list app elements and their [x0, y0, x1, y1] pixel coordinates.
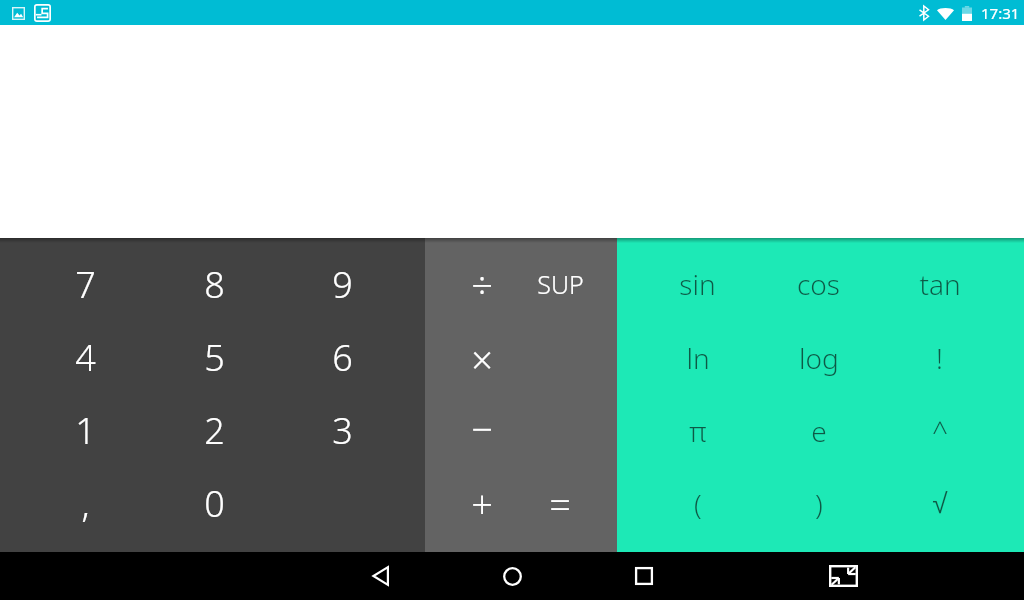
button[interactable]: 1	[21, 394, 150, 467]
button[interactable]: Home	[488, 552, 536, 600]
staticText: 17:31	[981, 3, 1020, 23]
button[interactable]: ×	[443, 322, 521, 395]
staticText: (	[694, 485, 702, 523]
button[interactable]: cos	[758, 247, 879, 321]
button[interactable]: 0	[150, 467, 278, 540]
button[interactable]: Recent apps	[620, 552, 668, 600]
staticText: π	[689, 412, 707, 450]
button[interactable]: 6	[278, 321, 406, 394]
button[interactable]: 9	[278, 247, 406, 321]
button[interactable]: ,	[21, 467, 150, 540]
staticText: ln	[686, 339, 710, 377]
button[interactable]: !	[879, 321, 1000, 394]
staticText: 9	[332, 260, 353, 309]
button[interactable]: +	[443, 467, 521, 540]
button[interactable]: (	[637, 467, 758, 540]
staticText: ^	[932, 412, 948, 450]
button[interactable]: =	[521, 467, 599, 540]
staticText: !	[936, 339, 943, 377]
staticText: sin	[679, 265, 716, 303]
button[interactable]: ^	[879, 394, 1000, 467]
button[interactable]: 3	[278, 394, 406, 467]
button[interactable]: 4	[21, 321, 150, 394]
staticText: 3	[332, 406, 353, 455]
button[interactable]: 2	[150, 394, 278, 467]
staticText: +	[471, 478, 493, 530]
button[interactable]: )	[758, 467, 879, 540]
button[interactable]: log	[758, 321, 879, 394]
staticText: ÷	[471, 258, 493, 310]
staticText: 2	[204, 406, 225, 455]
staticText: −	[471, 402, 493, 454]
staticText: SUP	[537, 267, 584, 301]
staticText: ×	[471, 333, 493, 385]
button[interactable]: Shrink screen	[819, 552, 867, 600]
staticText: ,	[81, 479, 90, 528]
button[interactable]: 8	[150, 247, 278, 321]
button[interactable]: e	[758, 394, 879, 467]
button[interactable]: Back	[356, 552, 404, 600]
button[interactable]: ln	[637, 321, 758, 394]
staticText: =	[549, 478, 571, 530]
staticText: e	[811, 412, 827, 450]
button[interactable]: ÷	[443, 247, 521, 321]
button[interactable]: SUP	[521, 247, 599, 321]
staticText: √	[932, 488, 948, 519]
staticText: 1	[75, 406, 96, 455]
button[interactable]: sin	[637, 247, 758, 321]
staticText: 4	[75, 333, 96, 382]
staticText: log	[799, 339, 839, 377]
staticText: 5	[204, 333, 225, 382]
button[interactable]: √	[879, 467, 1000, 540]
button[interactable]: 5	[150, 321, 278, 394]
staticText: 0	[204, 479, 225, 528]
staticText: 8	[204, 260, 225, 309]
staticText: )	[815, 485, 823, 523]
staticText: cos	[797, 265, 840, 303]
staticText: 7	[75, 260, 96, 309]
button[interactable]: π	[637, 394, 758, 467]
staticText: tan	[919, 265, 961, 303]
button[interactable]: 7	[21, 247, 150, 321]
button[interactable]: tan	[879, 247, 1000, 321]
staticText: 6	[332, 333, 353, 382]
button[interactable]: −	[443, 391, 521, 464]
